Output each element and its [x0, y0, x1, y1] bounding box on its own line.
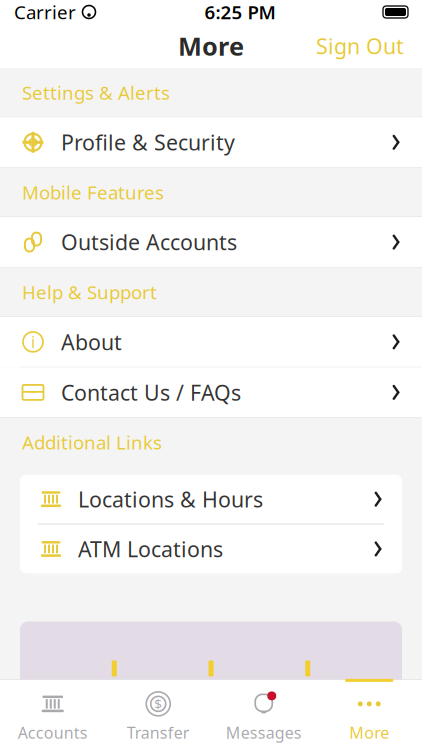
staticText: More: [349, 722, 389, 743]
staticText: $: [154, 695, 162, 713]
button[interactable]: Locations & Hours: [20, 475, 402, 524]
staticText: Mobile Features: [22, 180, 164, 205]
staticText: Outside Accounts: [61, 228, 237, 256]
button[interactable]: Outside Accounts: [0, 217, 422, 267]
button[interactable]: More: [316, 680, 422, 750]
staticText: Help & Support: [22, 280, 157, 304]
button[interactable]: i: [0, 317, 422, 367]
staticText: About: [61, 328, 122, 356]
staticText: Carrier: [14, 0, 76, 24]
staticText: Locations & Hours: [78, 485, 263, 513]
staticText: Profile & Security: [61, 128, 235, 156]
staticText: ATM Locations: [78, 535, 223, 563]
staticText: Contact Us / FAQs: [61, 378, 241, 406]
staticText: More: [178, 29, 244, 63]
button[interactable]: Messages: [211, 680, 316, 750]
staticText: Accounts: [18, 722, 88, 743]
staticText: i: [31, 331, 35, 352]
button[interactable]: $: [105, 680, 211, 750]
button[interactable]: Contact Us / FAQs: [0, 367, 422, 417]
button[interactable]: ATM Locations: [20, 524, 402, 573]
button[interactable]: Accounts: [0, 680, 105, 750]
staticText: Messages: [226, 722, 302, 743]
button[interactable]: Sign Out: [316, 24, 422, 68]
staticText: 6:25 PM: [204, 0, 275, 24]
staticText: Additional Links: [22, 430, 162, 455]
staticText: Transfer: [127, 722, 190, 743]
button[interactable]: Profile & Security: [0, 117, 422, 167]
staticText: Sign Out: [316, 32, 404, 60]
staticText: Settings & Alerts: [22, 80, 170, 105]
